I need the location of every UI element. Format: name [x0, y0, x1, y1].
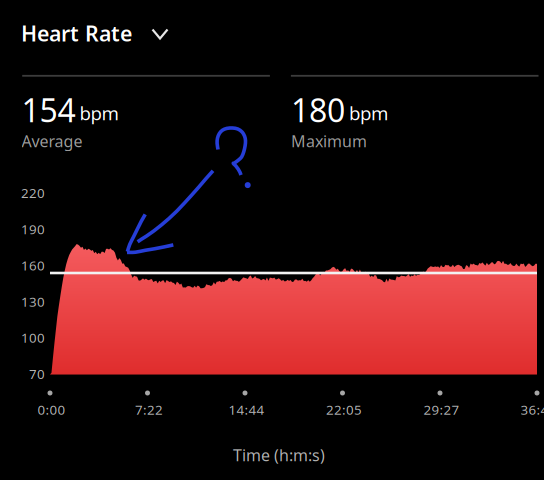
staticText: 7:22: [135, 401, 163, 418]
staticText: 190: [21, 220, 45, 238]
staticText: 100: [21, 329, 45, 346]
staticText: bpm: [349, 100, 388, 125]
staticText: Average: [21, 130, 82, 152]
staticText: 14:44: [228, 401, 264, 418]
staticText: 29:27: [423, 401, 459, 418]
staticText: 154: [21, 88, 75, 131]
staticText: 130: [21, 293, 45, 310]
staticText: Heart Rate: [21, 19, 132, 47]
button[interactable]: Heart Rate: [0, 0, 200, 56]
staticText: 36:49: [520, 401, 544, 418]
staticText: bpm: [79, 100, 118, 125]
staticText: 22:05: [326, 401, 362, 418]
staticText: 220: [21, 184, 45, 202]
staticText: 160: [21, 256, 45, 274]
staticText: Maximum: [291, 130, 367, 152]
staticText: 70: [29, 365, 45, 383]
staticText: Time (h:m:s): [233, 444, 325, 465]
staticText: 180: [291, 88, 345, 131]
staticText: 0:00: [37, 401, 65, 418]
